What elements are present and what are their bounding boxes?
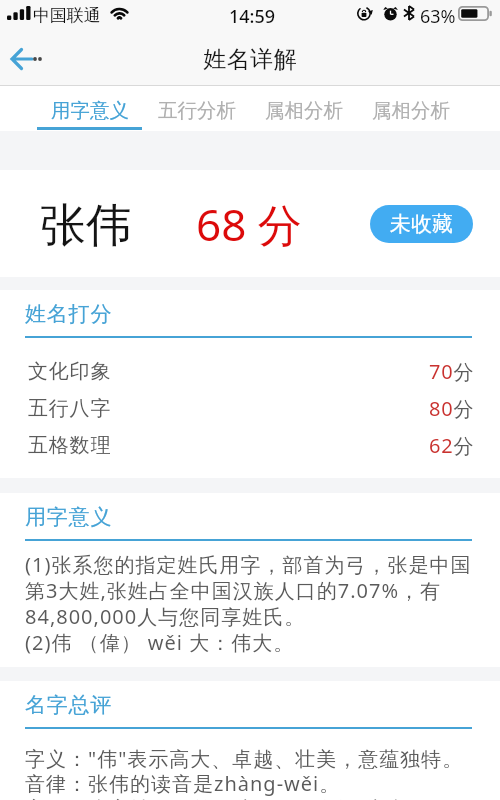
button[interactable]: 文化印象 [0,353,500,390]
staticText: 63% [420,4,456,29]
staticText: 68 分 [196,194,302,254]
button[interactable]: Back [0,32,56,86]
staticText: 62分 [429,432,475,459]
staticText: 用字意义 [51,98,129,123]
button[interactable]: 属相分析 [357,86,464,131]
staticText: 名字总评 [25,692,113,718]
button[interactable]: 五行分析 [143,86,250,131]
staticText: 姓名详解 [203,45,297,74]
staticText: 五行分析 [158,98,236,123]
staticText: (1)张系您的指定姓氏用字，部首为弓，张是中国第3大姓,张姓占全中国汉族人口的7… [25,551,492,656]
staticText: 文化印象 [28,359,112,384]
button[interactable]: 五格数理 [0,427,500,464]
staticText: 80分 [429,395,475,422]
staticText: 用字意义 [25,504,113,530]
button[interactable]: 用字意义 [36,86,143,131]
staticText: 五格数理 [28,433,112,458]
staticText: 五行八字 [28,396,112,421]
staticText: 属相分析 [372,98,450,123]
staticText: 14:59 [229,4,276,29]
staticText: 属相分析 [265,98,343,123]
staticText: 字义："伟"表示高大、卓越、壮美，意蕴独特。 音律：张伟的读音是zhàng-wě… [25,745,492,800]
button[interactable]: 属相分析 [250,86,357,131]
staticText: 未收藏 [390,211,453,237]
staticText: 中国联通 [33,5,101,26]
staticText: 姓名打分 [25,301,113,327]
button[interactable]: 五行八字 [0,390,500,427]
staticText: 张伟 [40,197,132,255]
button[interactable]: 未收藏 [370,205,473,243]
staticText: 70分 [429,358,475,385]
